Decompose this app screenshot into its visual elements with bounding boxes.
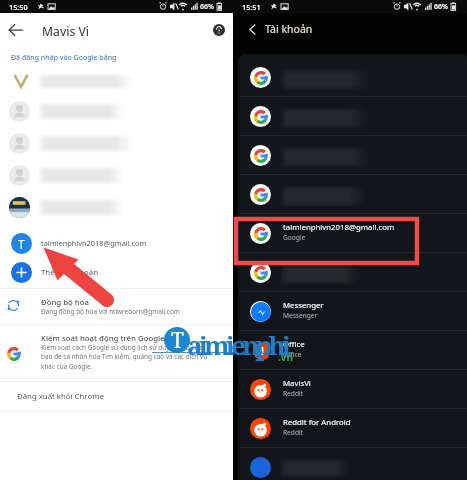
staticText: Kiểm soát hoạt động trên Google: [41, 333, 165, 344]
staticText: taimienphivn2018@gmail.com: [41, 238, 147, 248]
button[interactable]: Back: [8, 22, 24, 38]
staticText: 15:51: [242, 2, 261, 12]
button[interactable]: [238, 136, 467, 175]
button[interactable]: [238, 58, 467, 97]
button[interactable]: Thêm tài khoản: [0, 258, 233, 287]
staticText: Đăng xuất khỏi Chrome: [17, 391, 104, 402]
button[interactable]: T: [0, 228, 233, 258]
staticText: Reddit for Android: [283, 417, 351, 428]
staticText: Đồng bộ hóa: [41, 297, 89, 308]
staticText: T: [171, 327, 184, 352]
button[interactable]: [0, 133, 233, 165]
button[interactable]: Help: [213, 24, 225, 36]
staticText: Messenger: [283, 300, 324, 311]
button[interactable]: [238, 175, 467, 214]
staticText: Đã đăng nhập vào Google bằng: [11, 53, 117, 63]
staticText: Đang đồng bộ hóa với htlwreborn@gmail.co…: [41, 307, 180, 316]
button[interactable]: Kiểm soát hoạt động trên Google: [0, 325, 233, 381]
staticText: Tài khoản: [265, 22, 313, 36]
staticText: Mavis Vi: [42, 23, 90, 39]
button[interactable]: Đăng xuất khỏi Chrome: [0, 382, 233, 411]
button[interactable]: [238, 448, 467, 480]
button[interactable]: Đồng bộ hóa: [0, 289, 233, 321]
button[interactable]: MavisVi: [238, 370, 467, 409]
staticText: 66%: [434, 2, 448, 12]
staticText: Reddit: [283, 428, 304, 437]
staticText: Google: [283, 233, 306, 242]
button[interactable]: [0, 101, 233, 133]
staticText: Kiểm soát cách Google sử dụng lịch sử du…: [41, 343, 208, 371]
staticText: Office: [283, 339, 305, 350]
button[interactable]: taimienphivn2018@gmail.com: [238, 214, 467, 253]
staticText: MavisVi: [283, 378, 311, 389]
staticText: taimienphivn2018@gmail.com: [283, 222, 395, 233]
button[interactable]: [238, 253, 467, 292]
button[interactable]: Office: [238, 331, 467, 370]
button[interactable]: [0, 69, 233, 101]
staticText: aimienphi: [187, 327, 287, 362]
button[interactable]: Reddit for Android: [238, 409, 467, 448]
button[interactable]: Back: [246, 23, 259, 36]
staticText: 66%: [200, 2, 214, 12]
staticText: Thêm tài khoản: [41, 267, 98, 278]
button[interactable]: Messenger: [238, 292, 467, 331]
button[interactable]: [0, 165, 233, 197]
staticText: .vn: [278, 350, 294, 364]
button[interactable]: [238, 97, 467, 136]
staticText: Office: [283, 350, 302, 359]
staticText: 15:50: [9, 2, 28, 12]
staticText: Reddit: [283, 389, 304, 398]
button[interactable]: [0, 197, 233, 229]
staticText: Messenger: [283, 311, 318, 320]
staticText: T: [18, 236, 25, 252]
